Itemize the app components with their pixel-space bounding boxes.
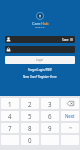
- staticText: Care: [32, 21, 41, 26]
- button[interactable]: Login: [5, 56, 75, 64]
- staticText: Login: [36, 58, 44, 62]
- button[interactable]: [5, 46, 75, 53]
- staticText: 2: [28, 100, 32, 108]
- button[interactable]: 1: [1, 98, 19, 109]
- staticText: MOBILE: [35, 26, 45, 29]
- button[interactable]: 6: [41, 111, 59, 121]
- button[interactable]: 0: [21, 135, 39, 145]
- button[interactable]: 3: [41, 98, 59, 109]
- button[interactable]: 9: [41, 123, 59, 133]
- staticText: 6: [48, 112, 52, 120]
- button[interactable]: Backspace: [61, 98, 79, 109]
- button[interactable]: Forgot Login/PIN?: [28, 68, 52, 72]
- staticText: 7: [8, 124, 12, 132]
- staticText: 1: [8, 100, 12, 108]
- staticText: 3: [48, 100, 52, 108]
- staticText: Next: [65, 113, 75, 119]
- staticText: Save: [62, 38, 69, 42]
- button[interactable]: Next: [61, 111, 79, 121]
- staticText: 4: [8, 112, 12, 120]
- button[interactable]: Save credentials: [70, 38, 73, 41]
- button[interactable]: New User? Register Here: [23, 75, 57, 79]
- button[interactable]: 8: [21, 123, 39, 133]
- staticText: 9: [48, 124, 52, 132]
- staticText: Hub: [41, 21, 49, 26]
- staticText: 5: [28, 112, 32, 120]
- button[interactable]: 7: [1, 123, 19, 133]
- button[interactable]: Dash: [61, 123, 79, 133]
- button[interactable]: 4: [1, 111, 19, 121]
- staticText: 8: [28, 124, 32, 132]
- button[interactable]: 5: [21, 111, 39, 121]
- button[interactable]: 2: [21, 98, 39, 109]
- button[interactable]: Save: [5, 36, 75, 43]
- staticText: 0: [28, 136, 32, 144]
